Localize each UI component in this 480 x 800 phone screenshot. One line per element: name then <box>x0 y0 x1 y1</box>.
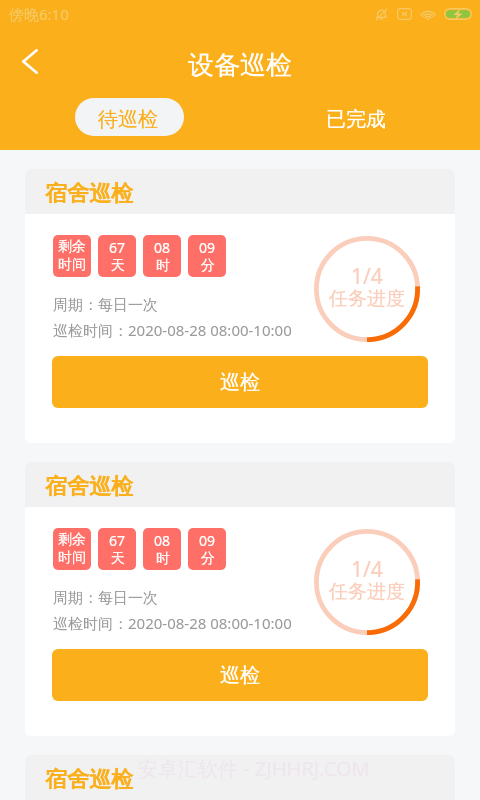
staticText: 时 <box>156 550 170 568</box>
staticText: 巡检 <box>220 663 260 688</box>
button[interactable]: 待巡检 <box>75 98 184 136</box>
staticText: 时间 <box>58 549 86 567</box>
staticText: 67 <box>109 238 126 257</box>
staticText: 已完成 <box>326 107 386 132</box>
staticText: 分 <box>201 550 215 568</box>
staticText: 08 <box>154 238 171 257</box>
staticText: 任务进度 <box>329 287 405 311</box>
button[interactable]: 巡检 <box>52 649 428 701</box>
staticText: 09 <box>199 238 216 257</box>
staticText: 傍晚6:10 <box>9 4 69 24</box>
staticText: 时 <box>156 257 170 275</box>
staticText: 时间 <box>58 256 86 274</box>
staticText: 宿舍巡检 <box>45 180 133 208</box>
staticText: 天 <box>111 550 125 568</box>
button[interactable]: 已完成 <box>301 98 410 136</box>
staticText: 剩余 <box>58 531 86 549</box>
staticText: 巡检时间：2020-08-28 08:00-10:00 <box>53 613 292 633</box>
staticText: 周期：每日一次 <box>53 296 158 315</box>
staticText: 1/4 <box>351 555 383 584</box>
button[interactable]: 巡检 <box>52 356 428 408</box>
staticText: 安卓汇软件 - ZJHHRJ.COM <box>138 755 370 782</box>
staticText: 天 <box>111 257 125 275</box>
staticText: 宿舍巡检 <box>45 473 133 501</box>
staticText: 巡检时间：2020-08-28 08:00-10:00 <box>53 320 292 340</box>
staticText: 巡检 <box>220 370 260 395</box>
staticText: 67 <box>109 531 126 550</box>
staticText: 周期：每日一次 <box>53 589 158 608</box>
staticText: 待巡检 <box>98 107 158 132</box>
button[interactable]: 返回 <box>8 39 52 83</box>
staticText: 任务进度 <box>329 580 405 604</box>
staticText: 设备巡检 <box>188 49 292 82</box>
staticText: 09 <box>199 531 216 550</box>
staticText: 剩余 <box>58 238 86 256</box>
staticText: 08 <box>154 531 171 550</box>
staticText: 1/4 <box>351 262 383 291</box>
staticText: 分 <box>201 257 215 275</box>
staticText: 宿舍巡检 <box>45 766 133 794</box>
